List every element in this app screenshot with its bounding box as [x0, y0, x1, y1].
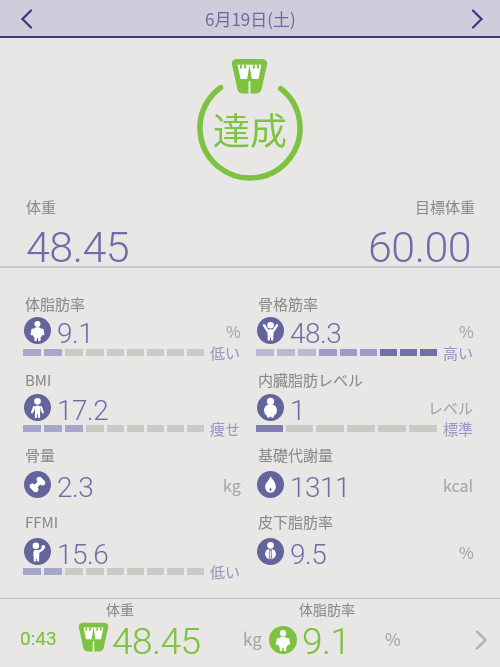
- staticText: 15.6: [57, 538, 109, 565]
- staticText: レベル: [428, 397, 474, 419]
- staticText: 48.3: [290, 317, 342, 344]
- staticText: 60.00: [368, 222, 472, 272]
- staticText: 痩せ: [210, 418, 241, 438]
- staticText: 6月19日(土): [205, 6, 296, 31]
- staticText: 低い: [210, 561, 241, 581]
- staticText: BMI: [25, 369, 52, 391]
- staticText: 骨量: [25, 444, 56, 466]
- button[interactable]: [24, 511, 241, 583]
- button[interactable]: [474, 628, 488, 652]
- button[interactable]: [257, 293, 474, 365]
- staticText: 9.5: [290, 538, 327, 565]
- staticText: 9.1: [302, 620, 351, 658]
- staticText: 体脂肪率: [25, 293, 86, 315]
- staticText: 低い: [210, 342, 241, 362]
- button[interactable]: [24, 444, 241, 516]
- staticText: 1: [290, 394, 306, 421]
- staticText: 皮下脂肪率: [258, 511, 334, 533]
- button[interactable]: [24, 369, 241, 441]
- staticText: 骨格筋率: [258, 293, 319, 315]
- staticText: kcal: [443, 473, 474, 496]
- staticText: kg: [223, 473, 241, 496]
- staticText: 1311: [290, 471, 351, 498]
- staticText: 目標体重: [415, 196, 476, 218]
- button[interactable]: [257, 444, 474, 516]
- staticText: FFMI: [25, 511, 59, 533]
- staticText: %: [459, 540, 474, 563]
- staticText: 0:43: [20, 627, 57, 649]
- staticText: 基礎代謝量: [258, 444, 334, 466]
- staticText: %: [459, 319, 474, 342]
- staticText: 内臓脂肪レベル: [258, 369, 364, 391]
- staticText: 2.3: [57, 471, 94, 498]
- staticText: 体重: [106, 599, 134, 619]
- staticText: %: [226, 319, 241, 342]
- button[interactable]: [257, 511, 474, 583]
- button[interactable]: [0, 599, 500, 667]
- staticText: 高い: [443, 342, 474, 362]
- staticText: 達成: [213, 102, 287, 156]
- staticText: %: [385, 626, 401, 651]
- button[interactable]: [24, 293, 241, 365]
- staticText: 標準: [443, 418, 474, 438]
- staticText: kg: [243, 626, 262, 651]
- staticText: 9.1: [57, 317, 94, 344]
- staticText: 体脂肪率: [299, 599, 355, 619]
- staticText: 48.45: [112, 620, 201, 658]
- staticText: 17.2: [57, 394, 109, 421]
- button[interactable]: [257, 369, 474, 441]
- button[interactable]: [470, 7, 484, 31]
- button[interactable]: [20, 7, 34, 31]
- staticText: 体重: [26, 196, 57, 218]
- staticText: 48.45: [26, 222, 130, 272]
